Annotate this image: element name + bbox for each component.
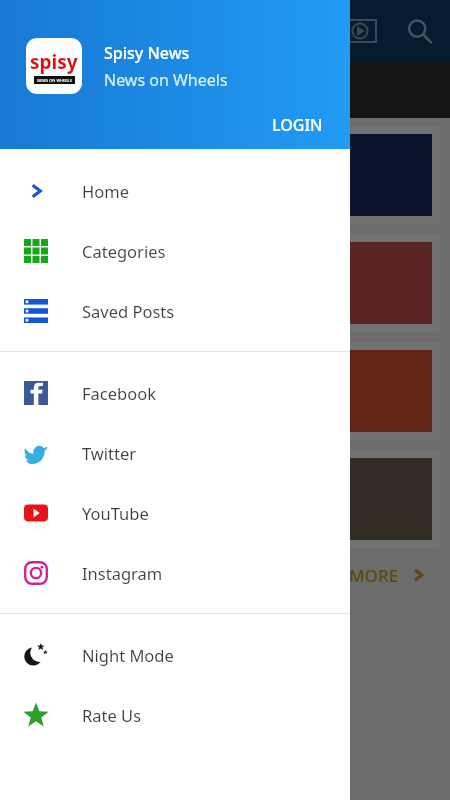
button[interactable]: MORE — [10, 554, 440, 596]
button[interactable]: Instagram — [0, 543, 350, 603]
staticText: Instagram — [82, 562, 163, 584]
button[interactable]: Night Mode — [0, 625, 350, 685]
staticText: Twitter — [82, 442, 137, 464]
button[interactable] — [10, 234, 440, 332]
button[interactable]: Twitter — [0, 423, 350, 483]
staticText: Saved Posts — [82, 300, 175, 322]
button[interactable]: Home — [0, 161, 350, 221]
button[interactable]: YouTube — [0, 483, 350, 543]
staticText: Spisy News — [104, 42, 190, 64]
button[interactable]: Categories — [0, 221, 350, 281]
staticText: Facebook — [82, 382, 156, 404]
staticText: spisy — [30, 49, 78, 75]
button[interactable] — [10, 450, 440, 548]
staticText: Night Mode — [82, 644, 174, 666]
button[interactable] — [10, 126, 440, 224]
staticText: YouTube — [82, 502, 149, 524]
button[interactable]: Saved Posts — [0, 281, 350, 341]
button[interactable] — [10, 342, 440, 440]
button[interactable]: Search — [404, 16, 434, 46]
button[interactable]: Rate Us — [0, 685, 350, 745]
button[interactable]: Videos — [342, 17, 378, 45]
button[interactable]: LOGIN — [265, 109, 330, 141]
staticText: LOGIN — [272, 114, 323, 136]
staticText: News on Wheels — [104, 69, 228, 91]
staticText: Categories — [82, 240, 166, 262]
staticText: NEWS ON WHEELS — [37, 78, 72, 83]
staticText: Home — [82, 180, 129, 202]
button[interactable]: Facebook — [0, 363, 350, 423]
staticText: Rate Us — [82, 704, 142, 726]
staticText: MORE — [349, 564, 399, 587]
